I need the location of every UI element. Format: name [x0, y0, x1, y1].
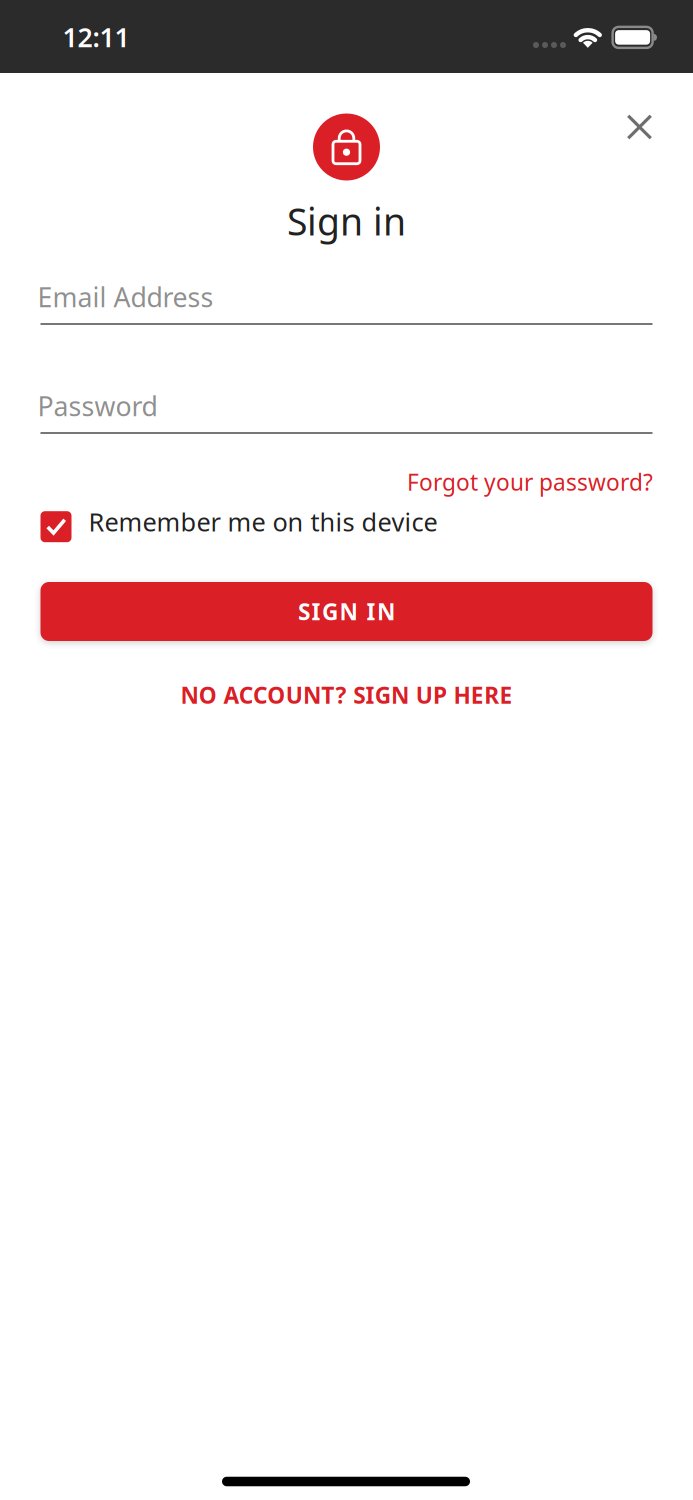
- textField[interactable]: Password: [37, 388, 649, 424]
- staticText: NO ACCOUNT? SIGN UP HERE: [181, 680, 512, 710]
- staticText: 12:11: [62, 19, 129, 55]
- staticText: Remember me on this device: [88, 505, 437, 538]
- staticText: Sign in: [287, 196, 406, 246]
- button[interactable]: Forgot your password?: [407, 467, 653, 497]
- staticText: Password: [37, 388, 157, 424]
- staticText: Forgot your password?: [407, 467, 653, 497]
- staticText: SIGN IN: [298, 596, 395, 626]
- button[interactable]: Remember me on this device: [40, 510, 652, 543]
- textField[interactable]: Email Address: [37, 279, 649, 315]
- button[interactable]: SIGN IN: [40, 582, 652, 641]
- button[interactable]: NO ACCOUNT? SIGN UP HERE: [181, 680, 512, 710]
- button[interactable]: Close: [626, 114, 653, 140]
- staticText: Email Address: [37, 279, 213, 315]
